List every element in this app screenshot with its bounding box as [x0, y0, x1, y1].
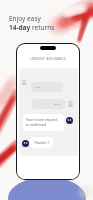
staticText: returns: [32, 23, 55, 32]
staticText: Enjoy easy: [9, 14, 41, 23]
staticText: Your return request is confirmed: [26, 117, 58, 127]
staticText: 14-day: [9, 23, 32, 32]
staticText: Thanks! :): [34, 140, 50, 145]
staticText: LONGEST ASSURANCE: [17, 57, 79, 61]
